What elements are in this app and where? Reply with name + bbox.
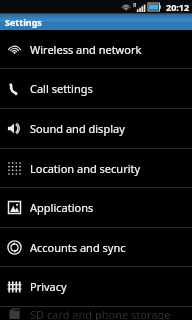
button[interactable]: SD card and phone storage	[0, 307, 192, 320]
staticText: 20:12	[166, 1, 190, 13]
button[interactable]: Wireless and network	[0, 30, 192, 68]
button[interactable]: Applications	[0, 188, 192, 227]
staticText: Sound and display	[30, 121, 125, 136]
button[interactable]: Sound and display	[0, 109, 192, 148]
staticText: Privacy	[30, 279, 67, 294]
staticText: Applications	[30, 200, 94, 215]
button[interactable]: Accounts and sync	[0, 228, 192, 266]
staticText: Settings	[5, 16, 42, 28]
staticText: SD card and phone storage	[30, 307, 171, 320]
staticText: Call settings	[30, 81, 93, 96]
button[interactable]: Call settings	[0, 69, 192, 108]
button[interactable]: Location and security	[0, 149, 192, 187]
staticText: Accounts and sync	[30, 240, 126, 255]
button[interactable]: Privacy	[0, 267, 192, 306]
staticText: Wireless and network	[30, 42, 142, 57]
staticText: Location and security	[30, 161, 141, 176]
